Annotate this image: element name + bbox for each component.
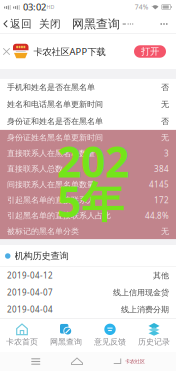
staticText: 2019-04-12 xyxy=(7,270,53,281)
staticText: 直接联系人总数 xyxy=(7,164,63,174)
staticText: 间接联系人在黑名单数量 xyxy=(7,180,95,189)
button[interactable]: 网黑查询 xyxy=(44,321,88,349)
staticText: 关闭 xyxy=(39,17,61,30)
staticText: 姓名和电话黑名单更新时间 xyxy=(7,99,103,109)
button[interactable]: 意见反馈 xyxy=(88,321,132,349)
staticText: 直接联系人在黑名单数量 xyxy=(7,148,95,158)
staticText: 被标记的黑名单分类 xyxy=(7,226,79,236)
staticText: 5年 xyxy=(57,173,124,229)
staticText: 44.8% xyxy=(145,210,169,221)
staticText: 4145 xyxy=(149,179,169,190)
staticText: 引起黑名单的直接联系人 xyxy=(7,195,95,205)
staticText: 无 xyxy=(161,226,169,236)
staticText: 网黑查询 xyxy=(72,17,120,31)
staticText: 返回 xyxy=(10,17,32,30)
staticText: 2019-04-04 xyxy=(7,304,53,315)
staticText: 机构历史查询 xyxy=(14,250,68,262)
button[interactable]: 关闭 xyxy=(36,14,64,33)
staticText: 卡农社区APP下载 xyxy=(33,45,105,58)
staticText: 打开 xyxy=(141,46,159,57)
staticText: 74% xyxy=(135,3,149,11)
staticText: 线上消费分期 xyxy=(121,305,169,314)
staticText: 202 xyxy=(57,133,129,189)
staticText: 卡农首页 xyxy=(6,337,38,347)
staticText: HD xyxy=(46,3,54,11)
staticText: 3 xyxy=(164,148,169,159)
staticText: 03:02 xyxy=(23,1,46,13)
button[interactable]: 卡农首页 xyxy=(0,321,44,349)
staticText: 其他 xyxy=(153,271,169,280)
button[interactable]: 关闭横幅 xyxy=(0,32,13,70)
staticText: 无 xyxy=(161,99,169,109)
staticText: 无 xyxy=(161,133,169,143)
staticText: 引起黑名单的直接联系人占比 xyxy=(7,211,111,221)
staticText: 身份证和姓名是否在黑名单 xyxy=(7,116,103,126)
button[interactable]: 历史记录 xyxy=(132,321,176,349)
staticText: 历史记录 xyxy=(138,337,170,347)
staticText: 2019-04-07 xyxy=(7,287,53,298)
button[interactable]: 打开 xyxy=(134,45,166,58)
staticText: 网黑查询 xyxy=(50,337,82,347)
staticText: 172 xyxy=(154,195,169,205)
button[interactable]: 返回 xyxy=(0,14,36,33)
staticText: 身份证姓名黑名单更新时间 xyxy=(7,133,103,143)
button[interactable]: More xyxy=(152,14,176,34)
staticText: 384 xyxy=(154,164,169,174)
staticText: 意见反馈 xyxy=(94,337,126,347)
staticText: 手机和姓名是否在黑名单 xyxy=(7,82,95,92)
staticText: 线上信用现金贷 xyxy=(113,288,169,297)
staticText: 卡农社区 xyxy=(125,358,145,365)
staticText: 否 xyxy=(161,116,169,126)
staticText: 否 xyxy=(161,82,169,92)
